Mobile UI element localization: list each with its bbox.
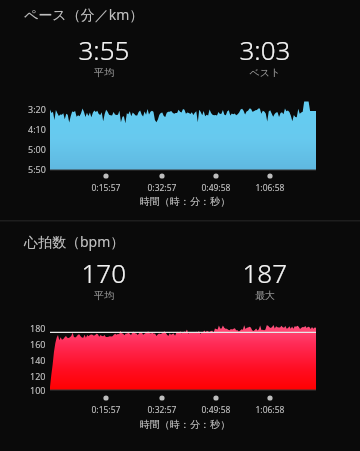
button[interactable]: Pace chart: [0, 0, 360, 220]
button[interactable]: Heart rate chart: [0, 220, 360, 451]
button[interactable]: [0, 0, 360, 451]
